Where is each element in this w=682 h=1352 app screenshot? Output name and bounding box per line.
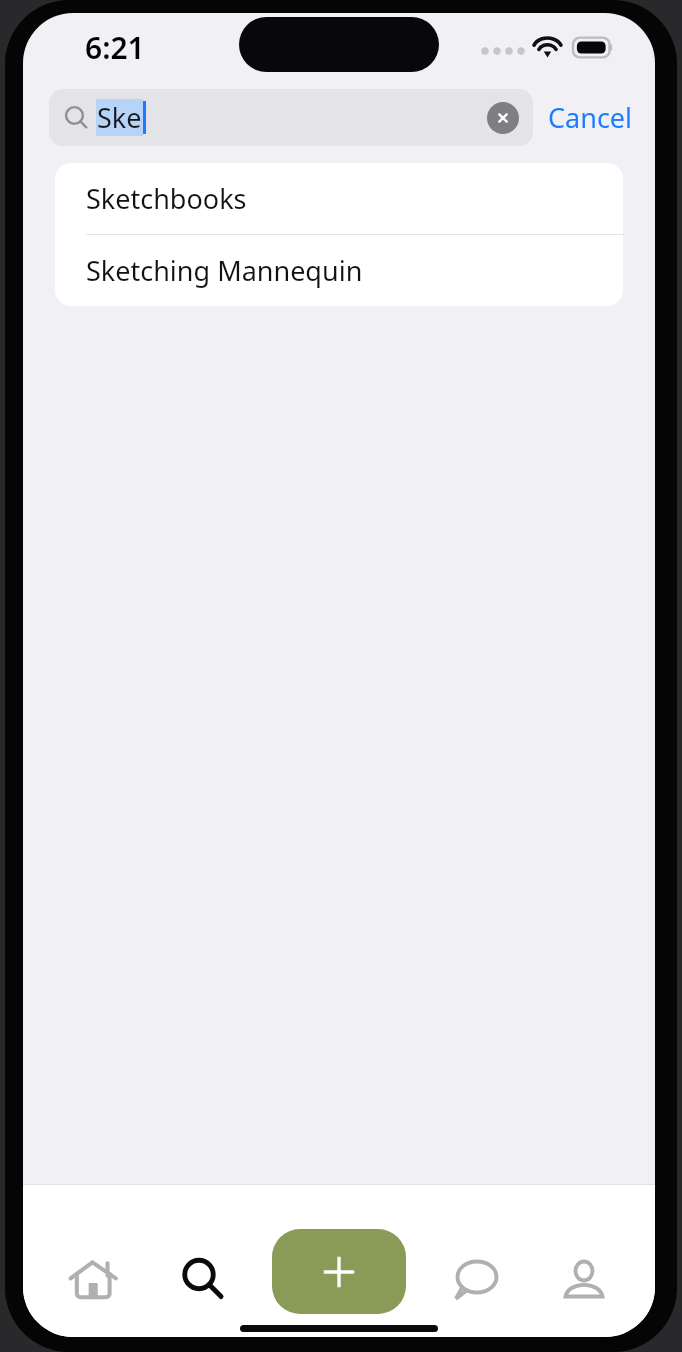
button[interactable]: Messages [437, 1240, 515, 1320]
button[interactable]: Cancel [546, 91, 635, 144]
button[interactable]: Sketching Mannequin [55, 235, 623, 306]
button[interactable]: Home [55, 1240, 133, 1320]
button[interactable]: Clear search text [487, 102, 519, 134]
button[interactable]: Sketchbooks [55, 163, 623, 234]
staticText: 6:21 [85, 27, 145, 68]
button[interactable]: Ske [49, 89, 533, 146]
button[interactable]: Profile [545, 1240, 623, 1320]
staticText: Ske [97, 99, 142, 136]
button[interactable]: Search [164, 1240, 242, 1320]
button[interactable]: Add [272, 1229, 406, 1314]
staticText: Cancel [548, 99, 633, 136]
staticText: Sketchbooks [86, 180, 247, 217]
staticText: Sketching Mannequin [86, 252, 363, 289]
